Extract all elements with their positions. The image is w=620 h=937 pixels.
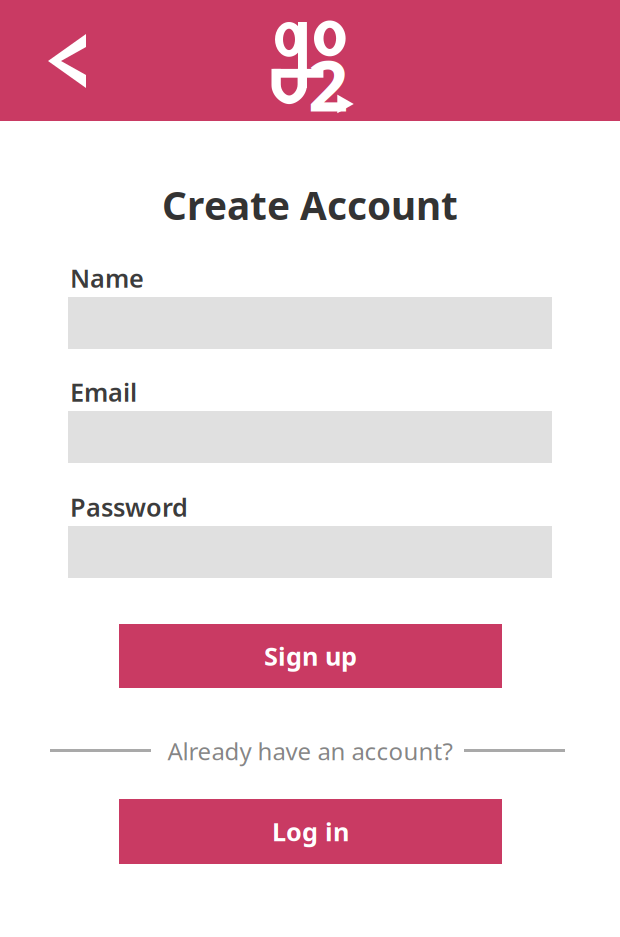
staticText: Create Account: [162, 179, 458, 231]
staticText: Sign up: [264, 639, 357, 673]
staticText: Email: [70, 375, 137, 409]
button[interactable]: Back: [30, 26, 104, 96]
staticText: Already have an account?: [167, 735, 452, 767]
staticText: 2: [308, 37, 348, 131]
button[interactable]: Sign up: [119, 624, 502, 688]
staticText: Log in: [272, 815, 349, 848]
staticText: Name: [70, 261, 144, 295]
staticText: Password: [70, 490, 188, 524]
button[interactable]: Log in: [119, 799, 502, 864]
